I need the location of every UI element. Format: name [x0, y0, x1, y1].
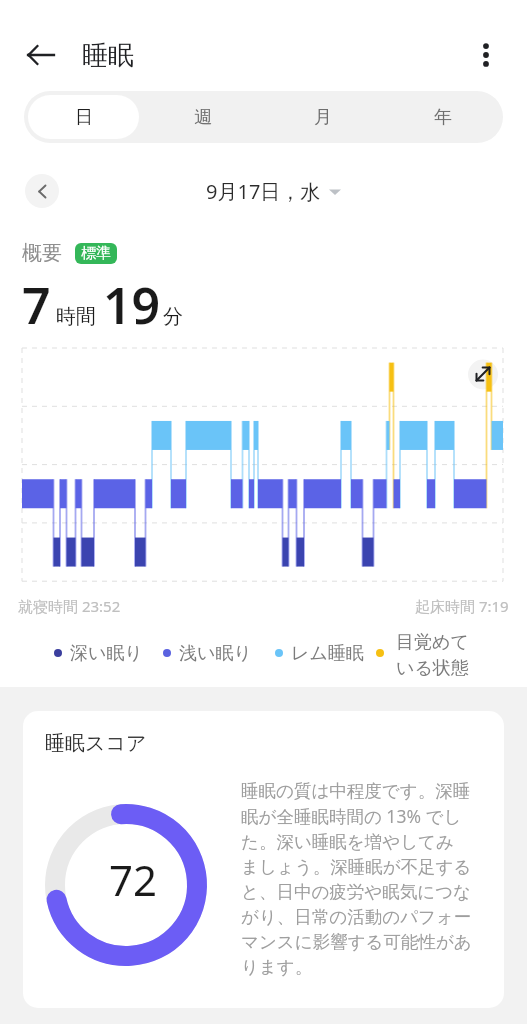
- staticText: 7: [22, 271, 51, 339]
- staticText: 目覚めて いる状態: [396, 631, 469, 679]
- button[interactable]: Previous day: [25, 174, 59, 208]
- staticText: 9月17日，水: [206, 178, 321, 205]
- staticText: 就寝時間 23:52: [18, 596, 121, 616]
- staticText: 月: [314, 106, 332, 129]
- staticText: 概要: [22, 241, 62, 266]
- staticText: レム睡眠: [291, 642, 364, 665]
- staticText: 睡眠の質は中程度です。深睡 眠が全睡眠時間の 13% でし た。深い睡眠を増やし…: [241, 780, 481, 978]
- staticText: 72: [109, 851, 158, 908]
- staticText: 日: [75, 106, 93, 129]
- staticText: 19: [103, 271, 161, 339]
- button[interactable]: 9月17日，水: [206, 178, 341, 205]
- staticText: 分: [163, 304, 183, 329]
- staticText: 深い眠り: [70, 642, 143, 665]
- button[interactable]: More options: [464, 33, 508, 77]
- staticText: 時間: [56, 304, 96, 329]
- button[interactable]: Back: [19, 33, 63, 77]
- button[interactable]: 年: [387, 95, 499, 139]
- button[interactable]: 週: [147, 95, 259, 139]
- staticText: 年: [434, 106, 452, 129]
- staticText: 起床時間 7:19: [415, 596, 509, 616]
- staticText: 睡眠: [82, 39, 134, 72]
- staticText: 睡眠スコア: [45, 731, 147, 756]
- button[interactable]: Expand chart: [468, 359, 498, 389]
- button[interactable]: 日: [28, 95, 139, 139]
- staticText: 浅い眠り: [179, 642, 252, 665]
- staticText: 週: [194, 106, 212, 129]
- staticText: 標準: [81, 244, 111, 263]
- button[interactable]: 月: [267, 95, 379, 139]
